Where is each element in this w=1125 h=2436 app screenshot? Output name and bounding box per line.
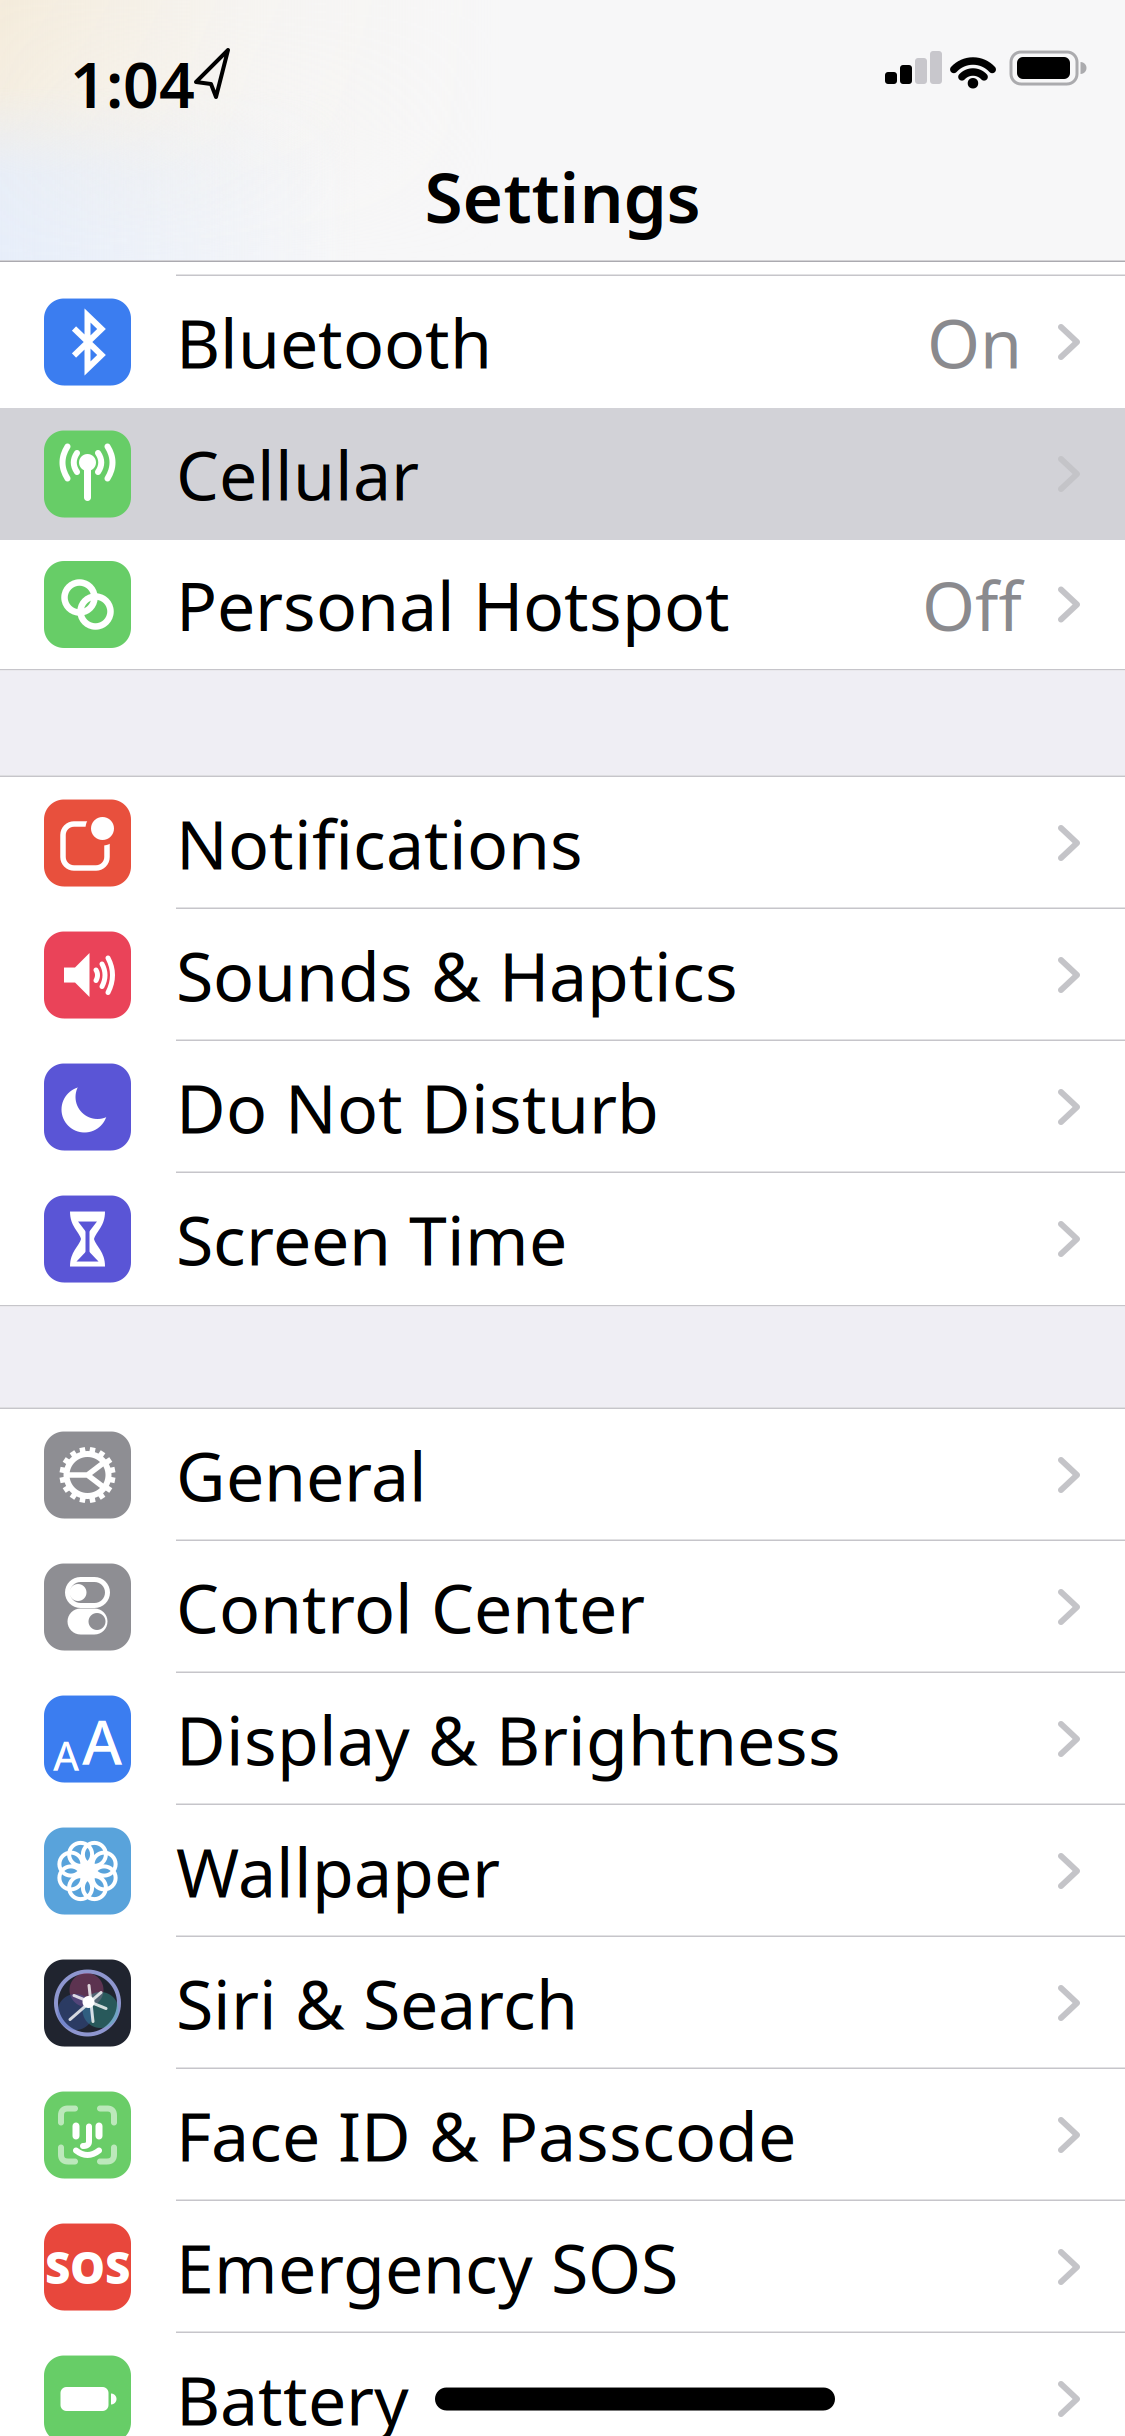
staticText: Do Not Disturb — [176, 1062, 659, 1152]
button[interactable]: Notifications — [0, 777, 1125, 909]
staticText: Off — [922, 559, 1022, 650]
button[interactable]: Screen Time — [0, 1173, 1125, 1305]
staticText: Sounds & Haptics — [176, 930, 738, 1020]
button[interactable]: A — [0, 1673, 1125, 1805]
staticText: Cellular — [176, 429, 419, 519]
button[interactable]: Battery — [0, 2333, 1125, 2436]
staticText: Notifications — [176, 798, 583, 888]
button[interactable]: Face ID & Passcode — [0, 2069, 1125, 2201]
button[interactable]: Do Not Disturb — [0, 1041, 1125, 1173]
staticText: A — [82, 1700, 122, 1782]
staticText: Screen Time — [176, 1194, 567, 1284]
staticText: Display & Brightness — [176, 1694, 841, 1784]
staticText: Bluetooth — [176, 297, 492, 387]
staticText: Battery — [176, 2354, 409, 2436]
button[interactable]: Wallpaper — [0, 1805, 1125, 1937]
staticText: Settings — [424, 150, 700, 242]
staticText: A — [53, 1729, 79, 1782]
staticText: 1:04 — [70, 42, 195, 125]
button[interactable]: Bluetooth — [0, 276, 1125, 408]
staticText: Emergency SOS — [176, 2222, 678, 2312]
staticText: Personal Hotspot — [176, 559, 730, 650]
staticText: Siri & Search — [176, 1958, 578, 2048]
staticText: SOS — [45, 2238, 130, 2296]
staticText: On — [927, 297, 1022, 387]
button[interactable]: General — [0, 1409, 1125, 1541]
button[interactable]: Personal Hotspot — [0, 540, 1125, 669]
staticText: Face ID & Passcode — [176, 2090, 796, 2180]
staticText: Control Center — [176, 1562, 645, 1652]
staticText: General — [176, 1430, 427, 1520]
button[interactable]: Siri & Search — [0, 1937, 1125, 2069]
button[interactable]: SOS — [0, 2201, 1125, 2333]
button[interactable]: Sounds & Haptics — [0, 909, 1125, 1041]
staticText: Wallpaper — [176, 1826, 500, 1916]
button[interactable]: Control Center — [0, 1541, 1125, 1673]
button[interactable]: Cellular — [0, 408, 1125, 540]
